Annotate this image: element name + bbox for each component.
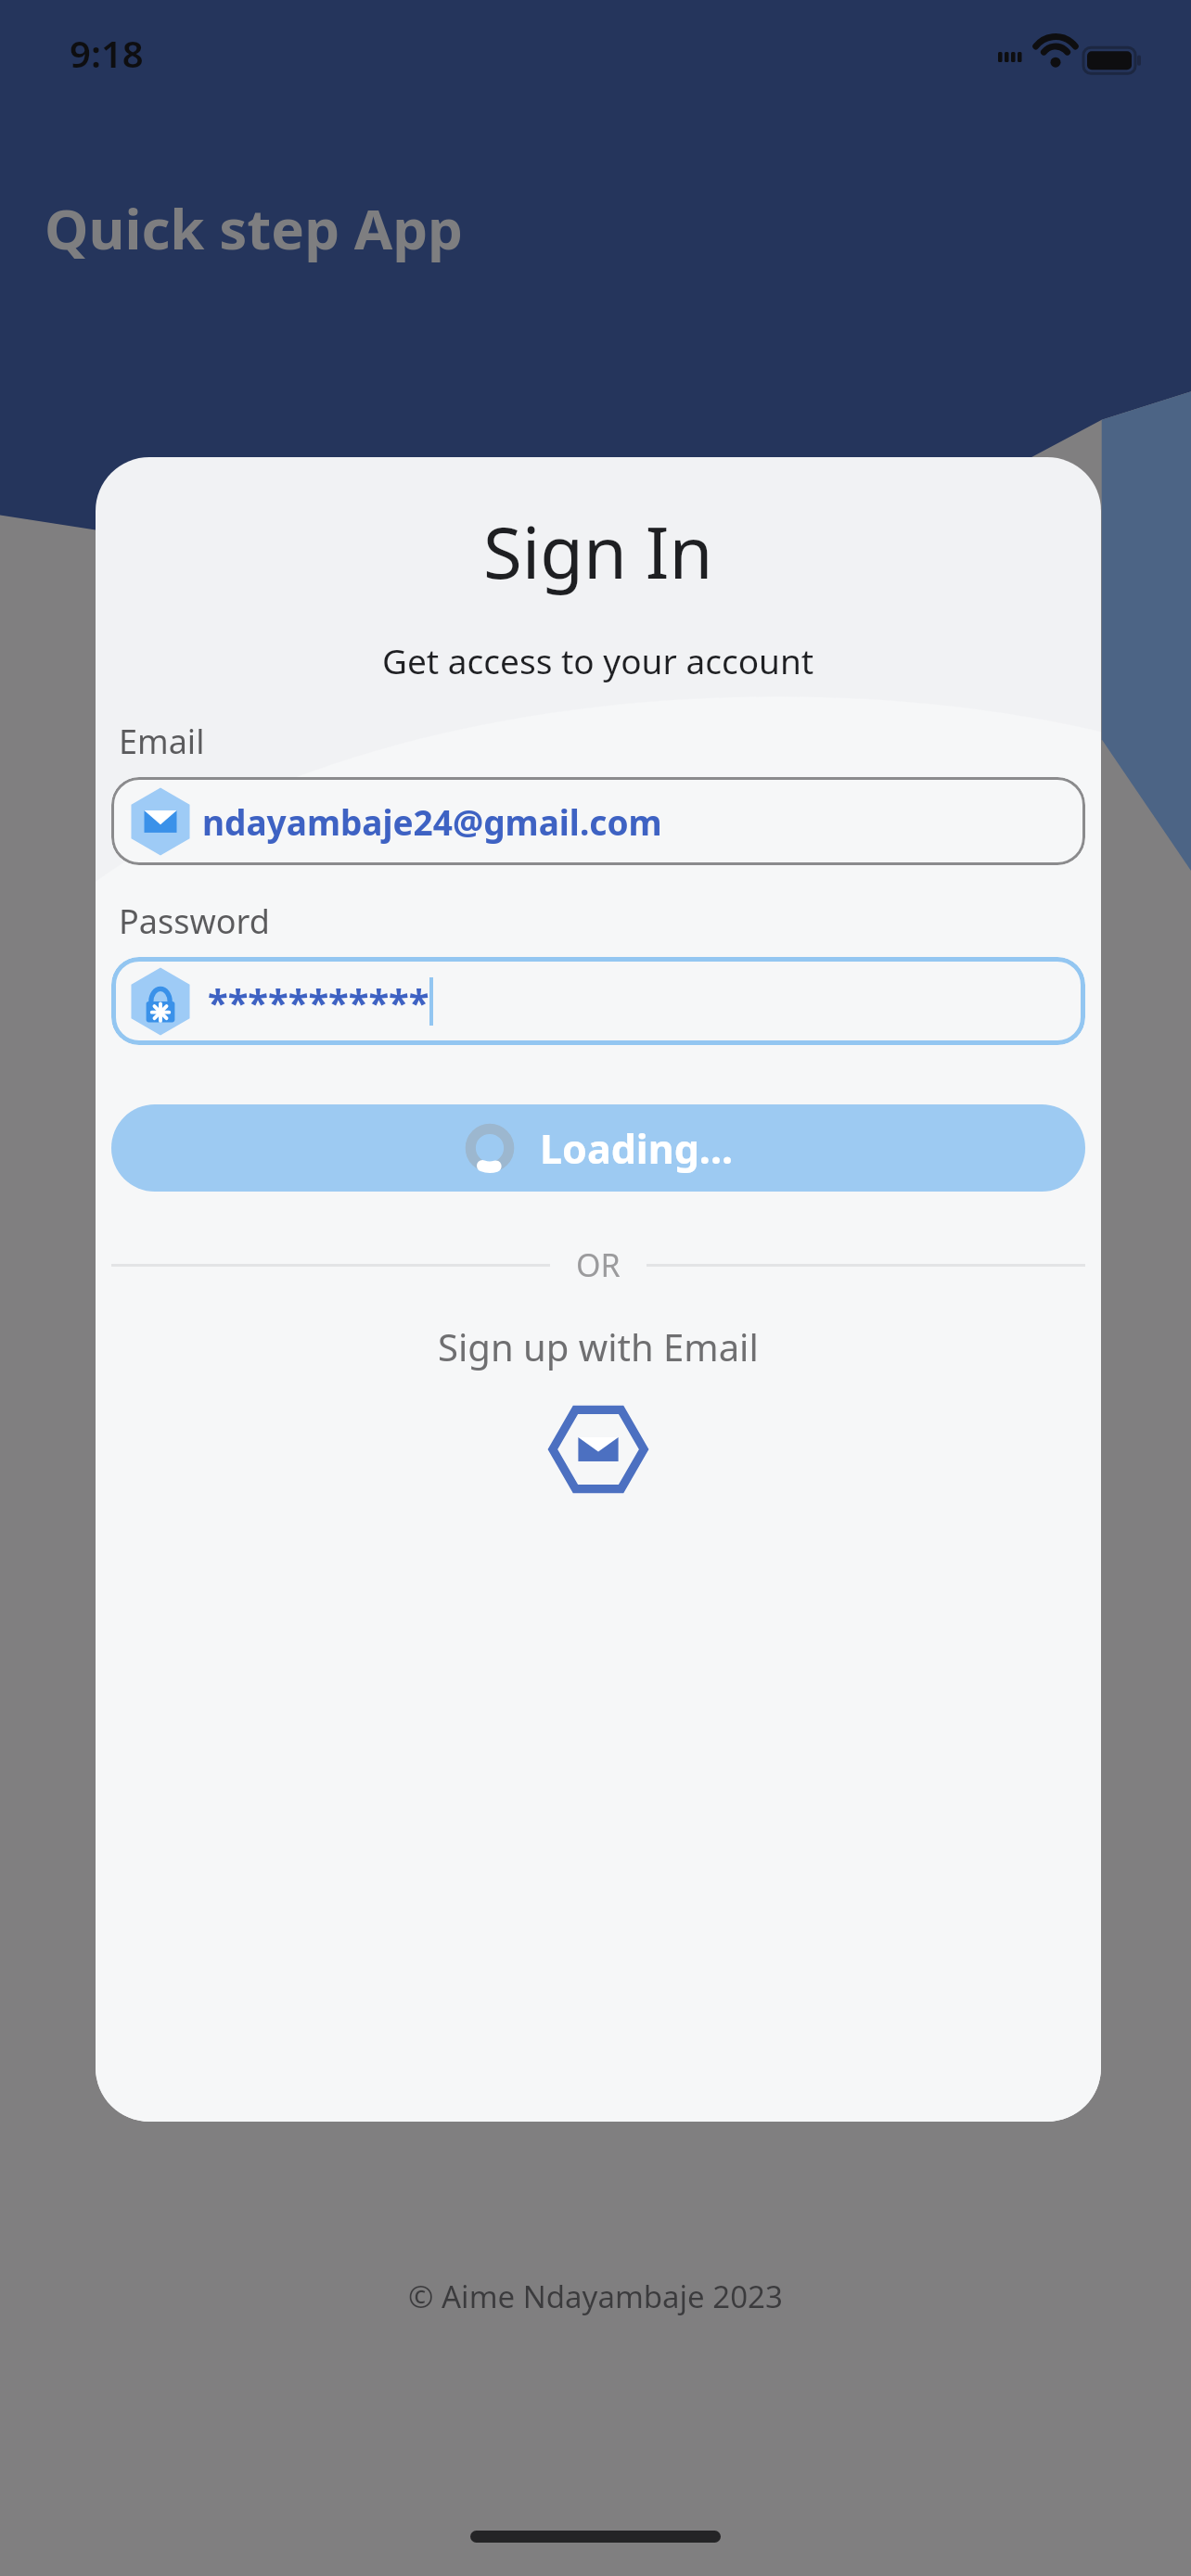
button[interactable]: Sign up with Email bbox=[438, 1321, 759, 1371]
staticText: Password bbox=[119, 899, 270, 944]
staticText: Email bbox=[119, 719, 205, 764]
button[interactable]: Loading... bbox=[111, 1104, 1085, 1192]
staticText: ndayambaje24@gmail.com bbox=[202, 798, 662, 845]
staticText: 9:18 bbox=[70, 28, 144, 78]
staticText: Sign In bbox=[483, 504, 713, 600]
staticText: *********** bbox=[208, 976, 429, 1027]
button[interactable]: Sign up with Email bbox=[543, 1394, 654, 1505]
staticText: Quick step App bbox=[45, 190, 464, 266]
staticText: © Aime Ndayambaje 2023 bbox=[408, 2276, 783, 2317]
staticText: Loading... bbox=[540, 1121, 734, 1176]
button[interactable]: ndayambaje24@gmail.com bbox=[111, 777, 1085, 865]
staticText: Get access to your account bbox=[382, 637, 814, 683]
staticText: OR bbox=[576, 1243, 621, 1286]
button[interactable]: *********** bbox=[111, 957, 1085, 1045]
